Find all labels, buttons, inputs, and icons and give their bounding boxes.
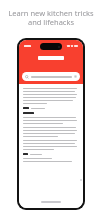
other: Menu [74,75,77,78]
button[interactable]: Menu [22,72,80,81]
staticText: Learn new kitchen tricks and lifehacks [8,8,94,28]
